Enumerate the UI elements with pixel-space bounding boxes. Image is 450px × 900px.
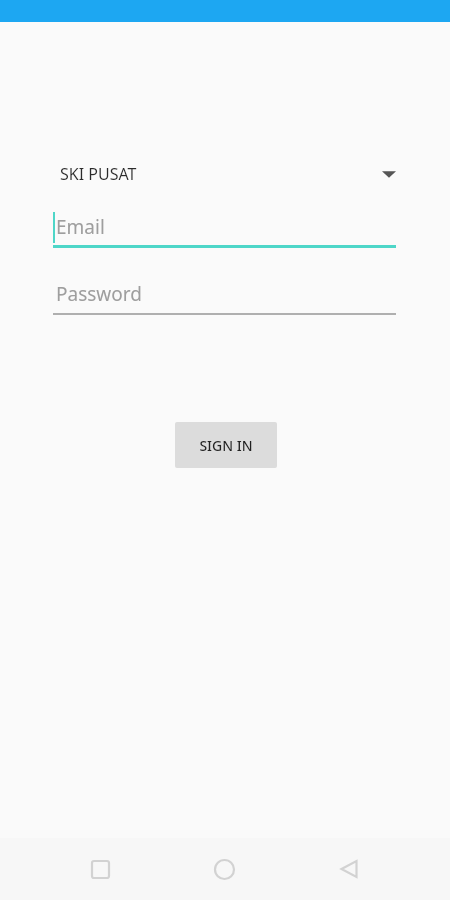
staticText: SKI PUSAT: [60, 163, 137, 185]
staticText: Email: [56, 214, 105, 240]
staticText: Password: [56, 281, 142, 307]
button[interactable]: SKI PUSAT: [53, 155, 396, 193]
button[interactable]: Email: [53, 207, 396, 248]
button[interactable]: Password: [53, 274, 396, 315]
button[interactable]: SIGN IN: [175, 422, 277, 468]
button[interactable]: Recent apps: [76, 845, 124, 893]
button[interactable]: Back: [325, 845, 373, 893]
staticText: SIGN IN: [199, 436, 253, 455]
button[interactable]: Home: [200, 845, 248, 893]
